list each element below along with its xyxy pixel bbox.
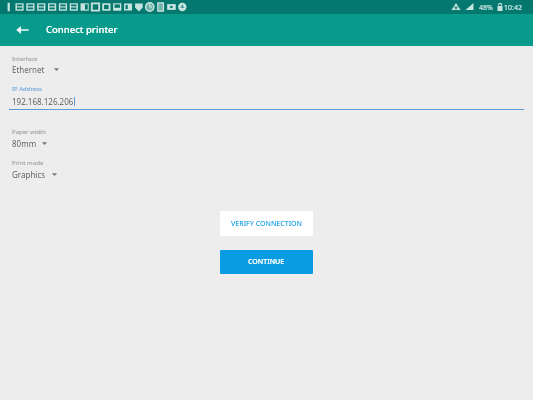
staticText: Graphics xyxy=(12,169,46,180)
button[interactable]: CONTINUE xyxy=(220,250,313,274)
staticText: 80mm xyxy=(12,138,37,149)
staticText: Ethernet xyxy=(12,64,45,75)
staticText: 48% xyxy=(479,3,493,13)
button[interactable]: 80mm xyxy=(12,138,48,149)
staticText: 10:42 xyxy=(504,3,522,13)
button[interactable]: 192.168.126.206 xyxy=(9,94,524,109)
staticText: CONTINUE xyxy=(248,257,285,267)
staticText: Interface xyxy=(12,55,38,63)
staticText: 192.168.126.206 xyxy=(12,96,74,107)
staticText: VERIFY CONNECTION xyxy=(231,219,303,229)
button[interactable]: Ethernet xyxy=(12,64,60,75)
staticText: Print mode xyxy=(12,159,44,167)
staticText: Connect printer xyxy=(46,23,118,36)
button[interactable]: Back xyxy=(8,16,36,44)
button[interactable]: Graphics xyxy=(12,169,58,180)
staticText: Paper width xyxy=(12,128,46,136)
staticText: IP Address xyxy=(12,85,42,93)
button[interactable]: VERIFY CONNECTION xyxy=(220,211,313,236)
